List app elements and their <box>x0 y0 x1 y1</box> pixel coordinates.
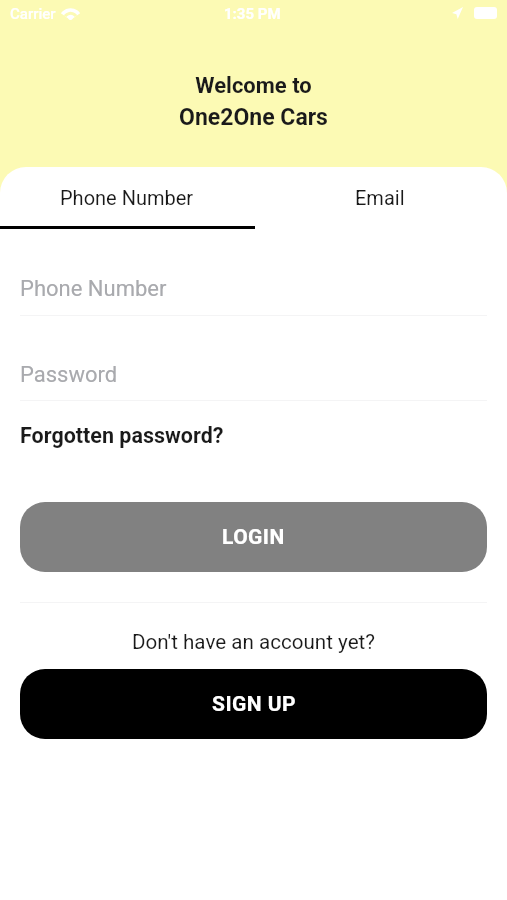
staticText: Forgotten password? <box>20 423 224 448</box>
other: Wi-Fi signal <box>60 5 81 20</box>
button[interactable]: Phone Number <box>20 276 487 302</box>
staticText: LOGIN <box>222 525 285 550</box>
staticText: Don't have an account yet? <box>20 630 487 654</box>
other: Battery full <box>474 7 497 19</box>
staticText: Email <box>355 186 405 209</box>
other: Location services active <box>452 7 463 19</box>
button[interactable]: LOGIN <box>20 502 487 572</box>
button[interactable]: SIGN UP <box>20 669 487 739</box>
staticText: One2One Cars <box>179 104 328 131</box>
button[interactable]: Phone Number <box>0 167 253 229</box>
staticText: SIGN UP <box>212 692 296 717</box>
button[interactable]: Email <box>253 167 507 229</box>
staticText: Carrier <box>10 5 56 23</box>
button[interactable]: Forgotten password? <box>20 423 487 448</box>
button[interactable]: Password <box>20 362 487 388</box>
staticText: 1:35 PM <box>224 5 281 23</box>
staticText: Phone Number <box>20 276 167 302</box>
staticText: Welcome to <box>195 73 312 99</box>
staticText: Phone Number <box>60 186 194 209</box>
staticText: Password <box>20 362 118 388</box>
